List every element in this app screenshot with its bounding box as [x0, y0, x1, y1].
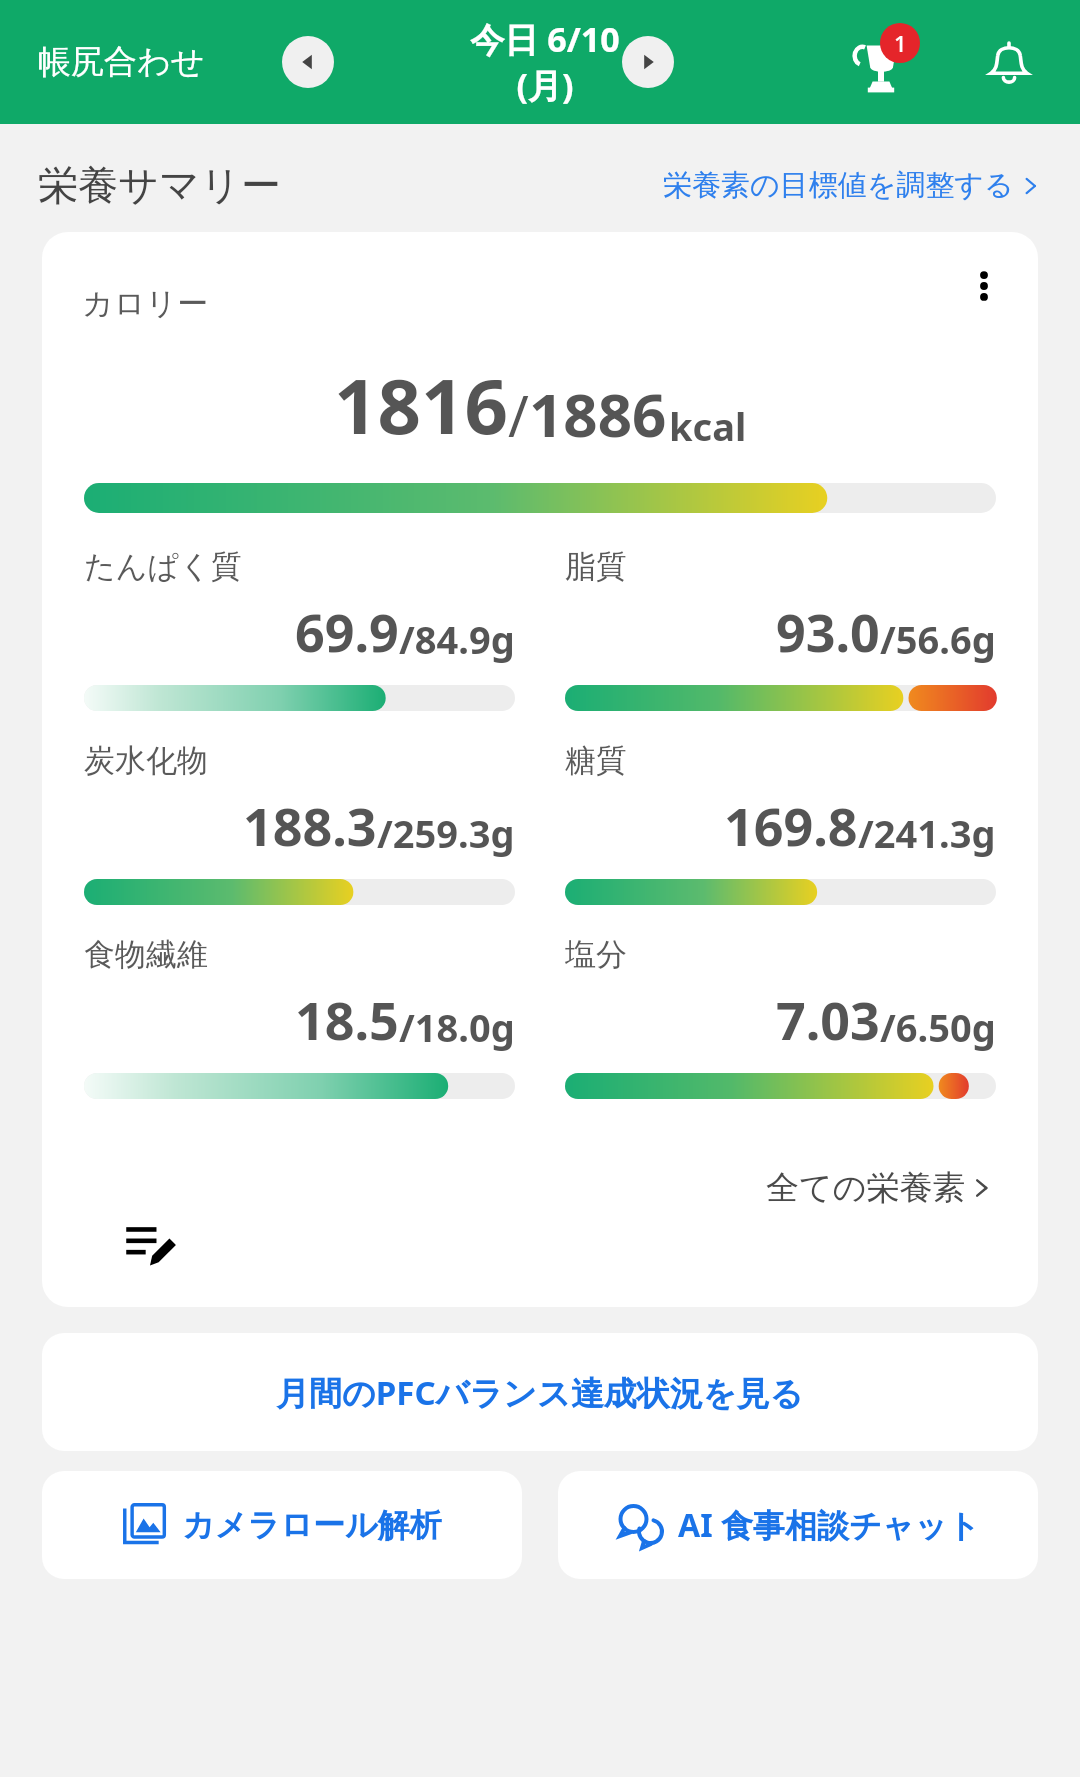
staticText: 1816: [334, 353, 508, 457]
staticText: カロリー: [82, 284, 209, 323]
staticText: 93.0: [776, 596, 880, 667]
staticText: /6.50g: [880, 1001, 996, 1053]
button[interactable]: カメラロール解析: [42, 1471, 522, 1579]
staticText: 脂質: [565, 547, 627, 586]
staticText: カメラロール解析: [182, 1505, 442, 1545]
staticText: /241.3g: [858, 807, 996, 859]
staticText: /84.9g: [399, 613, 515, 665]
button[interactable]: Previous day: [282, 36, 334, 88]
button[interactable]: Next day: [622, 36, 674, 88]
staticText: 塩分: [565, 935, 627, 974]
staticText: AI 食事相談チャット: [678, 1503, 980, 1547]
staticText: (月): [516, 62, 574, 108]
staticText: 糖質: [565, 741, 627, 780]
staticText: /: [508, 377, 529, 453]
staticText: 1: [894, 28, 907, 58]
button[interactable]: 月間のPFCバランス達成状況を見る: [42, 1333, 1038, 1451]
button[interactable]: 全ての栄養素: [762, 1163, 998, 1213]
button[interactable]: Edit notes: [118, 1213, 182, 1277]
staticText: 7.03: [776, 984, 880, 1055]
button[interactable]: 栄養素の目標値を調整する: [659, 163, 1046, 208]
staticText: /259.3g: [377, 807, 515, 859]
button[interactable]: More options: [952, 254, 1016, 318]
button[interactable]: Notifications: [972, 25, 1046, 99]
staticText: 炭水化物: [84, 741, 208, 780]
staticText: 食物繊維: [84, 935, 208, 974]
staticText: 169.8: [724, 790, 858, 861]
staticText: /56.6g: [880, 613, 996, 665]
staticText: 全ての栄養素: [766, 1167, 966, 1209]
staticText: たんぱく質: [84, 547, 242, 586]
staticText: /18.0g: [399, 1001, 515, 1053]
staticText: kcal: [669, 400, 747, 452]
staticText: 月間のPFCバランス達成状況を見る: [276, 1370, 804, 1415]
staticText: 栄養サマリー: [38, 160, 281, 210]
staticText: 1886: [529, 373, 667, 455]
staticText: 188.3: [243, 790, 377, 861]
staticText: 18.5: [295, 984, 399, 1055]
staticText: 69.9: [295, 596, 399, 667]
staticText: 栄養素の目標値を調整する: [663, 167, 1014, 204]
staticText: 今日 6/10: [470, 16, 620, 62]
button[interactable]: AI 食事相談チャット: [558, 1471, 1038, 1579]
button[interactable]: Achievements: [838, 19, 924, 105]
staticText: 帳尻合わせ: [38, 41, 205, 83]
